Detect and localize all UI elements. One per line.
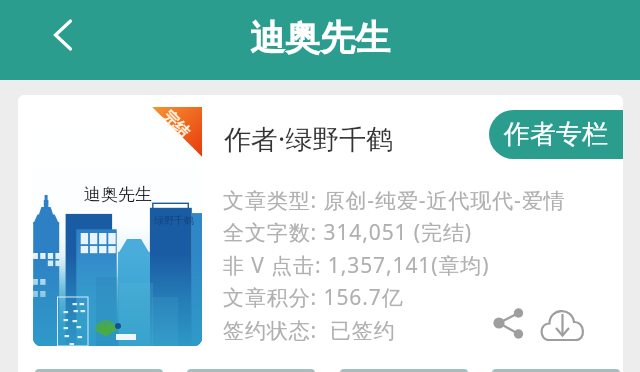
staticText: 绿野千鹤 (154, 214, 194, 227)
staticText: 文章类型: 原创-纯爱-近代现代-爱情 (223, 186, 566, 215)
button[interactable]: Back (41, 13, 85, 57)
button[interactable]: Download (537, 303, 589, 343)
button[interactable] (492, 369, 620, 372)
button[interactable]: 作者专栏 (489, 110, 623, 159)
staticText: 签约状态: 已签约 (223, 316, 396, 345)
staticText: 作者专栏 (504, 118, 608, 151)
staticText: 迪奥先生 (250, 16, 390, 60)
button[interactable]: Share (489, 304, 527, 342)
button[interactable] (340, 369, 468, 372)
button[interactable] (35, 369, 163, 372)
staticText: 非 V 点击: 1,357,141(章均) (223, 251, 490, 280)
staticText: 全文字数: 314,051 (完结) (223, 218, 473, 247)
staticText: 迪奥先生 (84, 184, 152, 205)
staticText: 完结 (159, 107, 193, 142)
staticText: 文章积分: 156.7亿 (223, 283, 404, 312)
button[interactable] (187, 369, 315, 372)
staticText: 作者·绿野千鹤 (224, 120, 394, 157)
